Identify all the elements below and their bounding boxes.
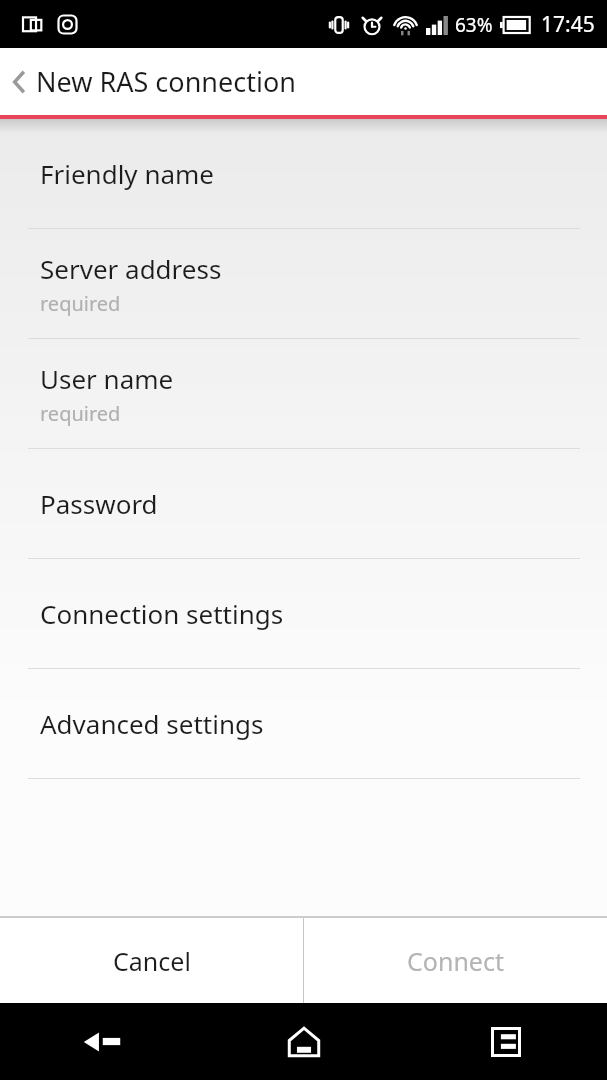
staticText: New RAS connection bbox=[36, 63, 296, 100]
button[interactable]: Connect bbox=[304, 918, 607, 1003]
staticText: Password bbox=[40, 486, 158, 521]
button[interactable]: Cancel bbox=[0, 918, 303, 1003]
staticText: 63% bbox=[455, 12, 493, 38]
staticText: Friendly name bbox=[40, 156, 215, 191]
staticText: 17:45 bbox=[541, 10, 595, 39]
staticText: Server address bbox=[40, 251, 222, 286]
button[interactable]: Friendly name bbox=[0, 119, 607, 229]
button[interactable]: Home bbox=[203, 1003, 405, 1080]
staticText: required bbox=[40, 400, 121, 427]
button[interactable]: Recent apps bbox=[405, 1003, 607, 1080]
staticText: Cancel bbox=[113, 944, 191, 978]
button[interactable]: Password bbox=[0, 449, 607, 559]
button[interactable]: User name bbox=[0, 339, 607, 449]
staticText: Connection settings bbox=[40, 596, 284, 631]
button[interactable]: Server address bbox=[0, 229, 607, 339]
staticText: required bbox=[40, 290, 121, 317]
button[interactable]: Back bbox=[0, 1003, 203, 1080]
button[interactable]: Connection settings bbox=[0, 559, 607, 669]
other: Back bbox=[8, 66, 30, 98]
staticText: Connect bbox=[407, 944, 504, 978]
button[interactable]: Back bbox=[0, 48, 607, 115]
staticText: Advanced settings bbox=[40, 706, 264, 741]
staticText: User name bbox=[40, 361, 174, 396]
button[interactable]: Advanced settings bbox=[0, 669, 607, 779]
